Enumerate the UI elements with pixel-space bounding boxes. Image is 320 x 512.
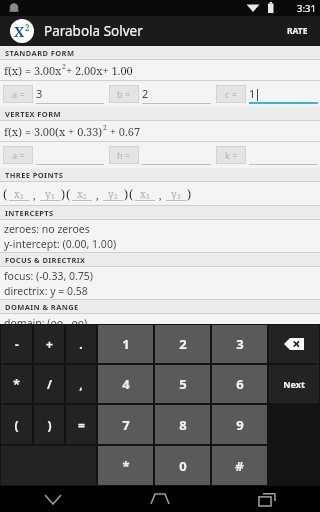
button[interactable]: Home xyxy=(106,486,213,512)
staticText: 4 xyxy=(122,375,130,393)
button[interactable]: h = xyxy=(106,142,213,168)
staticText: 2 xyxy=(25,22,30,33)
staticText: ( xyxy=(3,186,8,202)
staticText: b = xyxy=(117,88,131,100)
staticText: f(x) = 3.00(x + 0.33) xyxy=(4,124,103,139)
staticText: 2 xyxy=(83,192,87,201)
button[interactable]: 6 xyxy=(212,365,267,403)
staticText: y xyxy=(171,187,177,201)
staticText: STANDARD FORM xyxy=(5,48,75,58)
staticText: 2 xyxy=(103,123,107,133)
staticText: ( xyxy=(129,186,134,202)
staticText: 0 xyxy=(179,457,187,475)
button[interactable]: 3 xyxy=(212,325,267,363)
staticText: 2 xyxy=(142,86,149,101)
staticText: 3 xyxy=(146,192,150,201)
staticText: 8 xyxy=(179,416,187,434)
staticText: # xyxy=(235,457,244,475)
button[interactable]: 9 xyxy=(212,405,267,444)
button[interactable]: 1 xyxy=(98,325,153,363)
button[interactable]: # xyxy=(212,446,267,485)
staticText: 2 xyxy=(114,192,118,201)
button[interactable]: - xyxy=(1,325,32,363)
button[interactable]: ) xyxy=(34,405,64,444)
staticText: Next xyxy=(283,378,305,390)
staticText: DOMAIN & RANGE xyxy=(5,302,79,312)
button[interactable]: y xyxy=(39,187,61,201)
staticText: / xyxy=(47,376,52,392)
button[interactable]: Next xyxy=(269,365,319,403)
button[interactable]: + xyxy=(34,325,64,363)
staticText: - xyxy=(15,336,19,352)
button[interactable]: k = xyxy=(213,142,320,168)
staticText: X xyxy=(14,22,25,41)
staticText: a = xyxy=(12,149,25,161)
staticText: * xyxy=(13,376,20,392)
staticText: 1 xyxy=(122,335,130,353)
button[interactable]: a = xyxy=(0,81,106,107)
staticText: f(x) = 3.00x xyxy=(4,63,62,78)
staticText: + xyxy=(46,336,53,352)
staticText: directrix: y = 0.58 xyxy=(4,284,88,298)
staticText: 2 xyxy=(179,335,187,353)
button[interactable]: 8 xyxy=(155,405,210,444)
button[interactable]: = xyxy=(66,405,96,444)
staticText: 1 xyxy=(20,192,24,201)
staticText: 5 xyxy=(179,375,187,393)
staticText: Parabola Solver xyxy=(44,22,143,40)
staticText: zeroes: no zeroes xyxy=(4,222,90,236)
staticText: ) xyxy=(47,417,52,433)
button[interactable]: a = xyxy=(0,142,106,168)
staticText: y-intercept: (0.00, 1.00) xyxy=(4,237,117,251)
staticText: VERTEX FORM xyxy=(5,109,61,119)
staticText: 9 xyxy=(236,416,244,434)
button[interactable]: c = xyxy=(213,81,320,107)
staticText: 3 xyxy=(36,86,43,101)
staticText: 3:31 xyxy=(297,2,316,15)
button[interactable]: x xyxy=(71,187,93,201)
staticText: INTERCEPTS xyxy=(5,208,54,218)
button[interactable]: Hide keyboard xyxy=(0,486,106,512)
button[interactable]: y xyxy=(102,187,124,201)
staticText: 1 xyxy=(51,192,55,201)
staticText: x xyxy=(77,187,83,201)
staticText: 6 xyxy=(236,375,244,393)
button[interactable]: x xyxy=(8,187,30,201)
staticText: ) xyxy=(61,186,66,202)
staticText: + 0.67 xyxy=(107,124,141,139)
staticText: k = xyxy=(225,149,238,161)
staticText: ) xyxy=(187,186,192,202)
button[interactable]: Recent apps xyxy=(213,486,320,512)
button[interactable]: RATE xyxy=(275,16,320,46)
button[interactable]: . xyxy=(66,325,96,363)
button[interactable]: 7 xyxy=(98,405,153,444)
staticText: domain: (oo , oo) xyxy=(4,316,88,324)
button[interactable]: 2 xyxy=(155,325,210,363)
staticText: , xyxy=(30,187,39,202)
staticText: , xyxy=(93,187,102,202)
button[interactable]: * xyxy=(1,365,32,403)
staticText: 1 xyxy=(249,86,256,101)
button[interactable]: b = xyxy=(106,81,213,107)
button[interactable]: 4 xyxy=(98,365,153,403)
staticText: y xyxy=(108,187,114,201)
button[interactable]: / xyxy=(34,365,64,403)
staticText: 2 xyxy=(62,62,66,72)
button[interactable]: , xyxy=(66,365,96,403)
staticText: THREE POINTS xyxy=(5,170,64,180)
staticText: = xyxy=(78,417,85,433)
button[interactable]: * xyxy=(98,446,153,485)
button[interactable]: y xyxy=(165,187,187,201)
staticText: 7 xyxy=(122,416,130,434)
button[interactable]: x xyxy=(134,187,156,201)
staticText: ( xyxy=(66,186,71,202)
staticText: * xyxy=(122,457,130,475)
button[interactable]: 5 xyxy=(155,365,210,403)
staticText: h = xyxy=(117,149,131,161)
staticText: , xyxy=(156,187,165,202)
button[interactable]: ( xyxy=(1,405,32,444)
button[interactable]: 0 xyxy=(155,446,210,485)
button[interactable]: Backspace xyxy=(269,325,319,363)
staticText: 3 xyxy=(177,192,181,201)
